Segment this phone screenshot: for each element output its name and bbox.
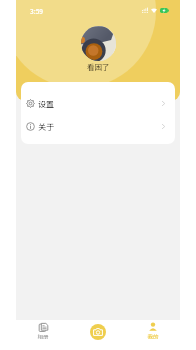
button[interactable]: 关于 (21, 115, 175, 138)
button[interactable]: Profile photo (81, 26, 116, 61)
staticText: 相册 (37, 333, 49, 341)
staticText: 设置 (38, 98, 54, 110)
button[interactable]: Camera (90, 324, 106, 340)
staticText: 关于 (38, 121, 54, 133)
staticText: 看困了 (87, 61, 110, 72)
staticText: 我的 (147, 333, 159, 341)
button[interactable]: 设置 (21, 92, 175, 115)
button[interactable]: 我的 (125, 320, 180, 343)
button[interactable]: 相册 (16, 320, 70, 343)
staticText: 3:59 (30, 6, 44, 15)
